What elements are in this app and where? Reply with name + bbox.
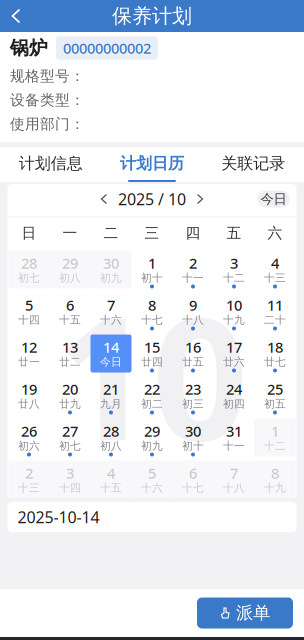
staticText: 派单 [236,602,270,624]
staticText: 4 [107,463,115,483]
staticText: 25 [267,379,283,399]
staticText: 3 [230,253,238,273]
staticText: 初九 [100,271,122,284]
staticText: 初七 [59,439,81,452]
staticText: 六 [267,224,282,242]
staticText: 5 [25,295,33,315]
staticText: 廿二 [59,355,81,368]
staticText: 29 [144,421,160,441]
staticText: 20 [62,379,78,399]
button[interactable]: 计划信息 [0,147,101,182]
staticText: 保养计划 [112,4,192,28]
staticText: 初二 [141,397,163,410]
staticText: 十四 [59,481,81,494]
staticText: 18 [267,337,283,357]
staticText: 十九 [223,313,245,326]
staticText: 十七 [182,481,204,494]
staticText: 16 [185,337,201,357]
staticText: 10 [56,263,248,486]
staticText: 日 [21,224,36,242]
staticText: 今日 [260,191,286,207]
staticText: 十六 [100,313,122,326]
staticText: 初十 [182,439,204,452]
staticText: 30 [185,421,201,441]
staticText: 九月 [100,397,122,410]
staticText: 规格型号： [10,67,85,85]
button[interactable]: 派单 [197,597,293,628]
staticText: 十六 [141,481,163,494]
staticText: 14 [103,337,119,357]
staticText: 十三 [264,271,286,284]
staticText: 三 [144,224,159,242]
staticText: 初七 [18,271,40,284]
staticText: 廿六 [223,355,245,368]
staticText: 十三 [18,481,40,494]
staticText: 初三 [182,397,204,410]
button[interactable]: 计划日历 [101,147,203,182]
staticText: 1 [271,421,279,441]
staticText: 初四 [223,397,245,410]
staticText: 二 [103,224,118,242]
staticText: 十八 [182,313,204,326]
staticText: 7 [107,295,115,315]
staticText: 10 [226,295,242,315]
staticText: 15 [144,337,160,357]
staticText: 十一 [223,439,245,452]
staticText: 31 [226,421,242,441]
staticText: 17 [226,337,242,357]
staticText: 计划信息 [19,154,83,173]
staticText: 00000000002 [63,38,151,58]
staticText: 初六 [18,439,40,452]
staticText: 21 [103,379,119,399]
staticText: 8 [148,295,156,315]
staticText: 26 [21,421,37,441]
staticText: 二十 [264,313,286,326]
button[interactable]: Next month [188,187,212,211]
staticText: 6 [66,295,74,315]
staticText: 29 [62,253,78,273]
staticText: 4 [271,253,279,273]
staticText: 十一 [182,271,204,284]
staticText: 十二 [264,439,286,452]
staticText: 廿五 [182,355,204,368]
staticText: 12 [21,337,37,357]
staticText: 十四 [18,313,40,326]
staticText: 十七 [141,313,163,326]
staticText: 2 [25,463,33,483]
staticText: 23 [185,379,201,399]
button[interactable]: 关联记录 [203,147,304,182]
staticText: 关联记录 [221,154,285,173]
staticText: 十五 [100,481,122,494]
staticText: 6 [189,463,197,483]
staticText: 8 [271,463,279,483]
staticText: 廿八 [18,397,40,410]
staticText: 廿七 [264,355,286,368]
staticText: 一 [62,224,77,242]
staticText: 初九 [141,439,163,452]
staticText: 十二 [223,271,245,284]
staticText: 27 [62,421,78,441]
staticText: 5 [148,463,156,483]
staticText: 9 [189,295,197,315]
staticText: 19 [21,379,37,399]
staticText: 十九 [264,481,286,494]
staticText: 今日 [100,355,122,368]
staticText: 11 [267,295,283,315]
staticText: 初五 [264,397,286,410]
staticText: 计划日历 [120,154,184,173]
staticText: 初八 [100,439,122,452]
staticText: 3 [66,463,74,483]
staticText: 设备类型： [10,91,85,109]
button[interactable]: Back [0,0,32,32]
staticText: 2025 / 10 [118,188,186,210]
button[interactable]: 今日 [257,190,289,207]
staticText: 2025-10-14 [17,506,99,528]
staticText: 13 [62,337,78,357]
button[interactable]: Previous month [92,187,116,211]
staticText: 24 [226,379,242,399]
staticText: 初十 [141,271,163,284]
staticText: 28 [21,253,37,273]
staticText: 28 [103,421,119,441]
staticText: 使用部门： [10,115,85,133]
staticText: 四 [185,224,200,242]
